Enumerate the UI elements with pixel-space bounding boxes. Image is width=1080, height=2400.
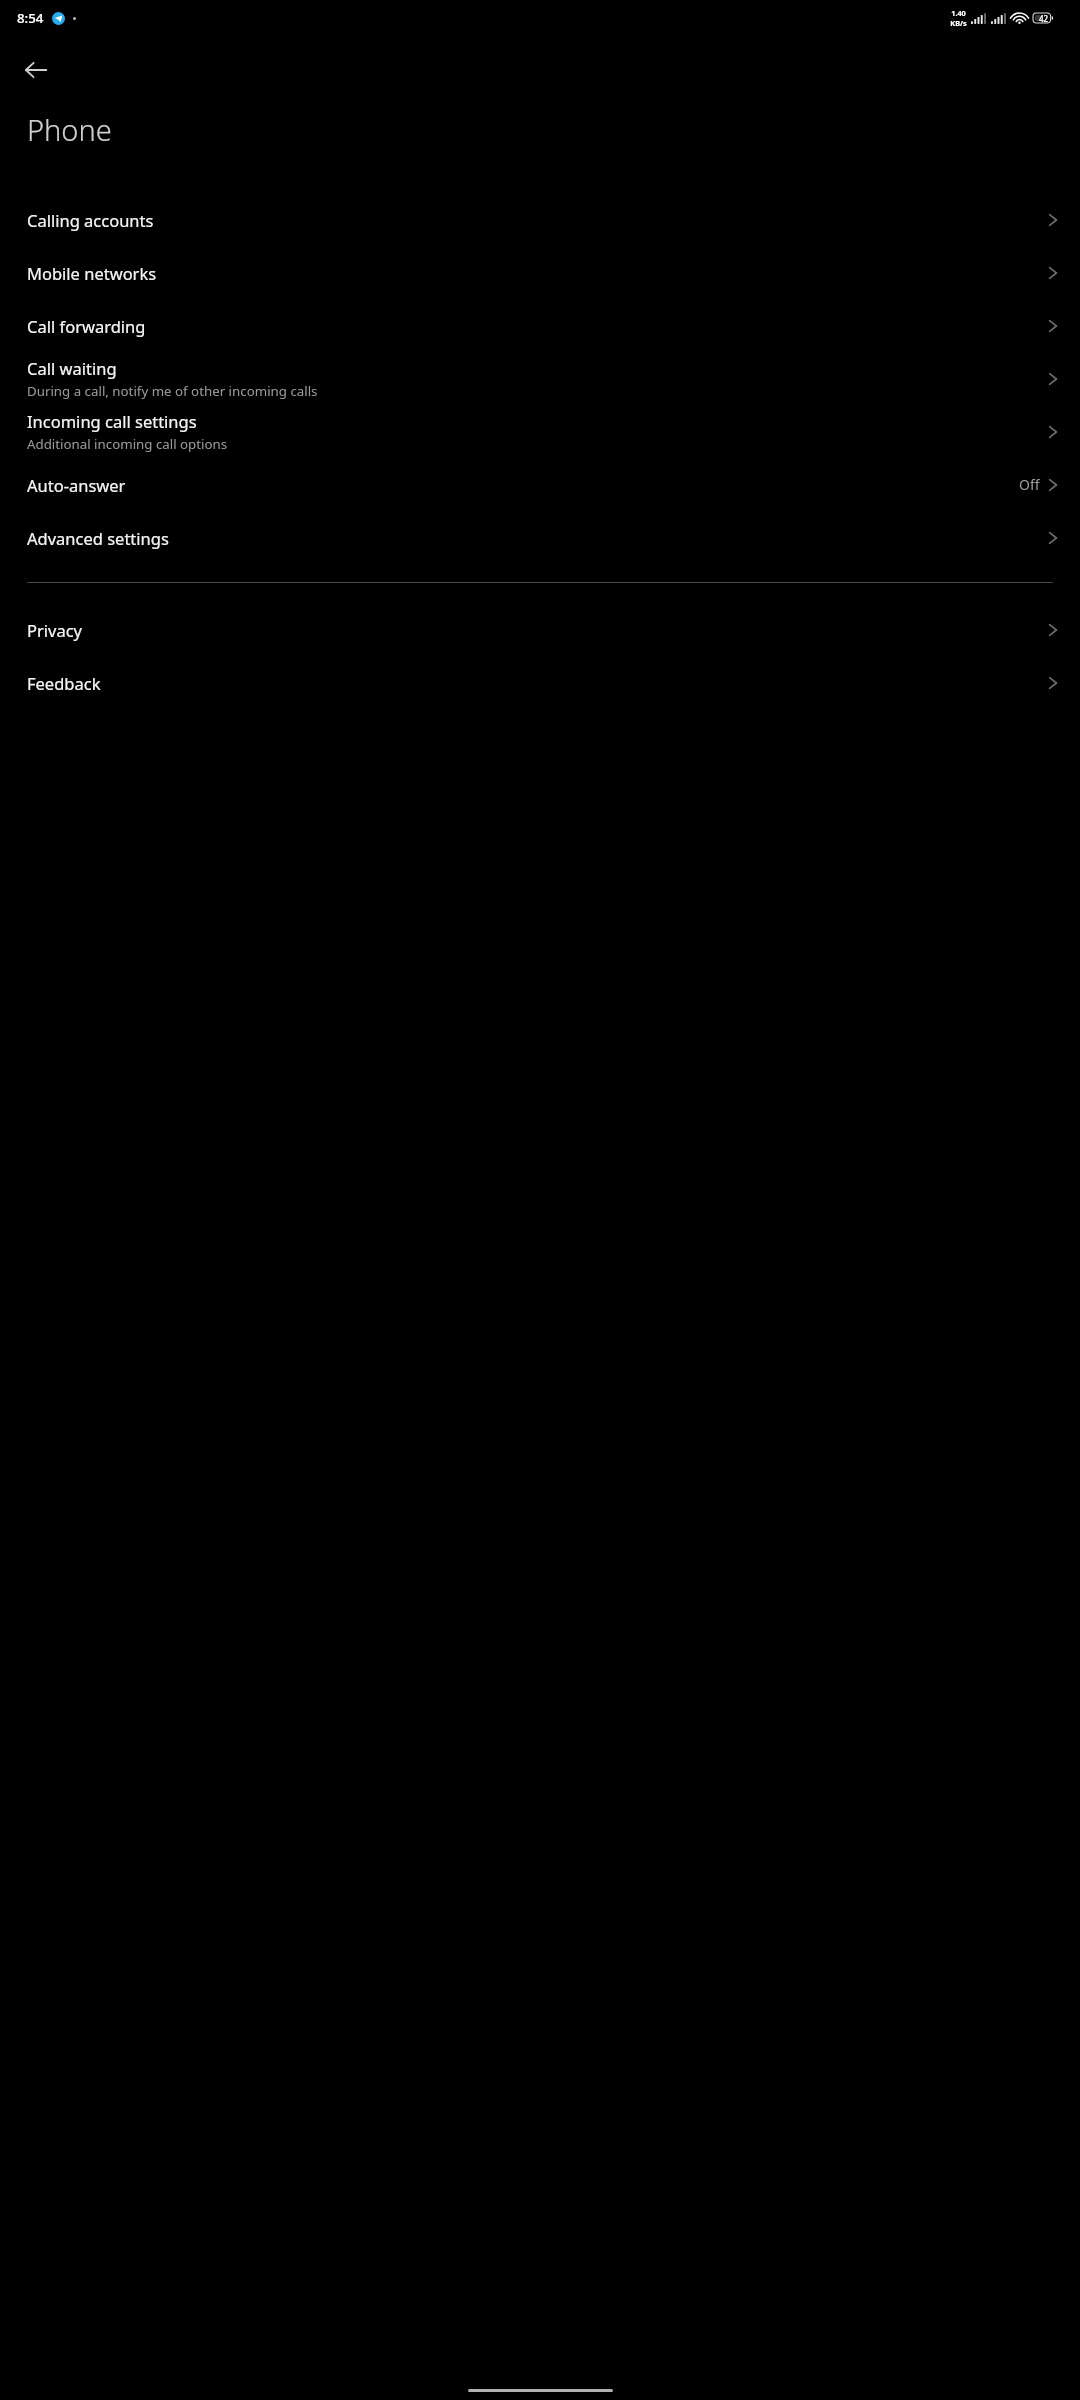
staticText: Off: [1019, 475, 1040, 494]
button[interactable]: Auto-answer: [0, 458, 1080, 511]
button[interactable]: Call forwarding: [0, 299, 1080, 352]
staticText: 8:54: [17, 9, 44, 27]
button[interactable]: Privacy: [0, 603, 1080, 656]
staticText: Auto-answer: [27, 474, 126, 496]
staticText: Incoming call settings: [27, 410, 197, 432]
button[interactable]: Calling accounts: [0, 193, 1080, 246]
staticText: Call forwarding: [27, 315, 146, 337]
staticText: Privacy: [27, 619, 83, 641]
staticText: Phone: [27, 110, 112, 149]
staticText: Feedback: [27, 672, 101, 694]
staticText: Calling accounts: [27, 209, 154, 231]
button[interactable]: Mobile networks: [0, 246, 1080, 299]
button[interactable]: Incoming call settings: [0, 405, 1080, 458]
button[interactable]: Advanced settings: [0, 511, 1080, 564]
staticText: 1.40: [951, 8, 966, 18]
staticText: Additional incoming call options: [27, 435, 228, 453]
staticText: 42: [1039, 13, 1049, 24]
button[interactable]: Call waiting: [0, 352, 1080, 405]
button[interactable]: Feedback: [0, 656, 1080, 709]
staticText: Call waiting: [27, 357, 117, 379]
staticText: KB/s: [950, 18, 967, 28]
staticText: During a call, notify me of other incomi…: [27, 382, 318, 400]
staticText: Mobile networks: [27, 262, 157, 284]
staticText: Advanced settings: [27, 527, 169, 549]
button[interactable]: Back: [12, 46, 60, 94]
